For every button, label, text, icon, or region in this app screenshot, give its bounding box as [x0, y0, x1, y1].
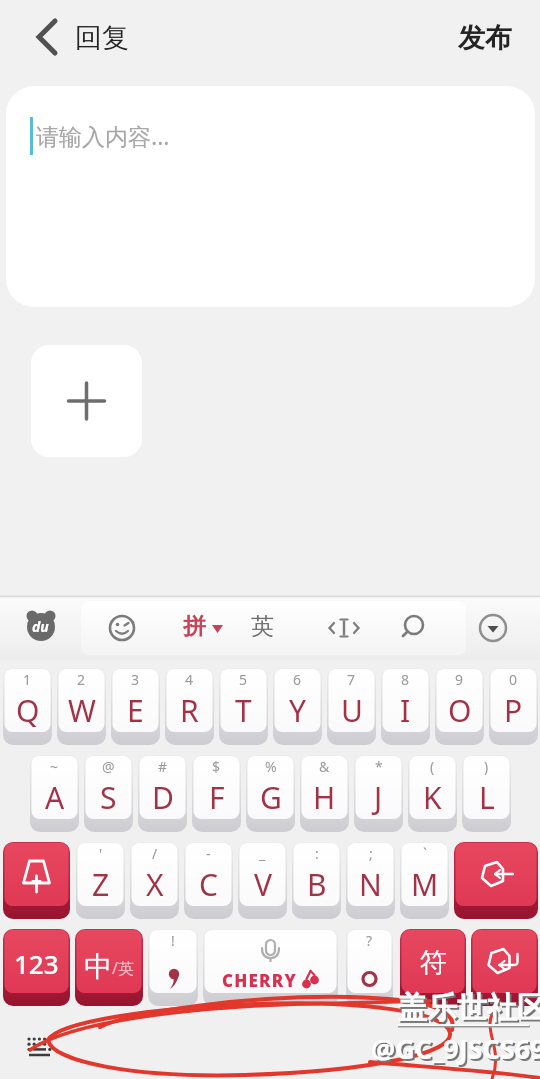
staticText: B — [307, 864, 327, 905]
staticText: F — [209, 777, 225, 818]
staticText: _ — [259, 844, 266, 863]
staticText: J — [374, 777, 383, 818]
staticText: K — [423, 777, 442, 818]
staticText: 1 — [23, 670, 32, 689]
button[interactable]: ) — [462, 755, 511, 832]
staticText: 2 — [77, 670, 86, 689]
button[interactable] — [471, 929, 538, 1006]
button[interactable]: 8 — [381, 668, 430, 745]
staticText: 5 — [239, 670, 248, 689]
button[interactable]: ~ — [30, 755, 79, 832]
button[interactable]: 6 — [273, 668, 322, 745]
staticText: 7 — [347, 670, 356, 689]
staticText: 盖乐世社区 — [399, 991, 540, 1029]
button[interactable]: 拼 — [178, 600, 234, 656]
button[interactable] — [18, 1028, 62, 1066]
staticText: /英 — [112, 957, 134, 979]
staticText: D — [152, 777, 174, 818]
staticText: @ — [102, 757, 115, 776]
staticText: 123 — [14, 946, 59, 981]
button[interactable]: _ — [238, 842, 287, 919]
button[interactable] — [326, 610, 362, 646]
staticText: ( — [430, 757, 435, 776]
button[interactable] — [475, 610, 511, 646]
staticText: @GC_9JSCS69 — [373, 1032, 540, 1069]
button[interactable]: ! — [148, 929, 198, 1006]
staticText: Q — [16, 690, 40, 731]
staticText: Z — [92, 864, 110, 905]
staticText: Y — [289, 690, 306, 731]
button[interactable]: ? — [346, 929, 393, 1006]
button[interactable] — [75, 929, 143, 1006]
button[interactable]: @ — [84, 755, 133, 832]
button[interactable]: 英 — [247, 600, 287, 656]
staticText: M — [411, 864, 439, 905]
button[interactable]: 发布 — [445, 10, 525, 65]
button[interactable]: ( — [408, 755, 457, 832]
button[interactable]: ; — [346, 842, 395, 919]
button[interactable]: 0 — [489, 668, 538, 745]
button[interactable]: # — [138, 755, 187, 832]
button[interactable]: 123 — [3, 929, 70, 1006]
button[interactable]: ` — [400, 842, 449, 919]
staticText: G — [260, 777, 282, 818]
staticText: N — [359, 864, 382, 905]
button[interactable]: 符 — [400, 929, 466, 1006]
button[interactable] — [30, 12, 66, 62]
button[interactable]: CHERRY — [203, 929, 338, 1006]
button[interactable] — [395, 610, 431, 646]
staticText: ) — [484, 757, 489, 776]
button[interactable]: % — [246, 755, 295, 832]
staticText: 请输入内容... — [36, 120, 170, 151]
staticText: P — [504, 690, 523, 731]
button[interactable] — [3, 842, 70, 919]
staticText: W — [68, 690, 96, 731]
button[interactable]: / — [130, 842, 179, 919]
staticText: du — [32, 617, 49, 636]
button[interactable]: 5 — [219, 668, 268, 745]
staticText: 英 — [251, 612, 274, 641]
staticText: CHERRY — [222, 969, 297, 992]
staticText: A — [45, 777, 65, 818]
staticText: & — [319, 757, 330, 776]
staticText: 9 — [455, 670, 464, 689]
button[interactable]: 4 — [165, 668, 214, 745]
staticText: 盖乐世社区 — [397, 989, 540, 1027]
button[interactable]: * — [354, 755, 403, 832]
button[interactable]: 3 — [111, 668, 160, 745]
button[interactable]: $ — [192, 755, 241, 832]
button[interactable]: & — [300, 755, 349, 832]
staticText: I — [400, 690, 411, 731]
button[interactable]: ' — [76, 842, 125, 919]
button[interactable]: 1 — [3, 668, 52, 745]
button[interactable]: 7 — [327, 668, 376, 745]
staticText: ! — [171, 931, 175, 950]
button[interactable]: 2 — [57, 668, 106, 745]
staticText: 发布 — [458, 21, 512, 55]
button[interactable] — [454, 842, 538, 919]
button[interactable]: : — [292, 842, 341, 919]
staticText: @GC_9JSCS69 — [371, 1030, 540, 1067]
staticText: / — [152, 844, 158, 863]
staticText: - — [206, 844, 211, 863]
staticText: C — [199, 864, 218, 905]
button[interactable]: 请输入内容... — [6, 86, 535, 307]
button[interactable]: - — [184, 842, 233, 919]
button[interactable]: du — [24, 609, 58, 643]
button[interactable] — [31, 345, 142, 457]
staticText: 符 — [420, 946, 447, 980]
staticText: H — [313, 777, 336, 818]
button[interactable]: 9 — [435, 668, 484, 745]
staticText: E — [127, 690, 144, 731]
staticText: 拼 — [183, 612, 206, 641]
staticText: X — [146, 864, 164, 905]
staticText: * — [375, 757, 383, 776]
button[interactable] — [104, 610, 140, 646]
staticText: 中 — [84, 949, 112, 984]
staticText: ; — [369, 844, 373, 863]
staticText: O — [448, 690, 472, 731]
staticText: % — [265, 757, 277, 776]
staticText: L — [479, 777, 495, 818]
staticText: U — [341, 690, 363, 731]
staticText: 8 — [401, 670, 410, 689]
